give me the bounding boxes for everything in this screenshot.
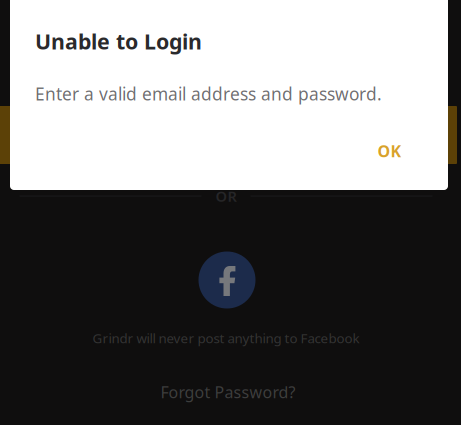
staticText: OR <box>215 186 236 206</box>
staticText: Enter a valid email address and password… <box>35 82 382 105</box>
staticText: OK <box>377 140 401 162</box>
button[interactable]: Log In <box>0 106 457 164</box>
button[interactable]: OK <box>354 129 424 173</box>
staticText: Forgot Password? <box>160 381 295 403</box>
staticText: Unable to Login <box>35 27 202 55</box>
button[interactable]: Continue with Facebook <box>198 251 255 308</box>
button[interactable]: Forgot Password? <box>138 375 318 409</box>
staticText: Grindr will never post anything to Faceb… <box>92 329 359 347</box>
